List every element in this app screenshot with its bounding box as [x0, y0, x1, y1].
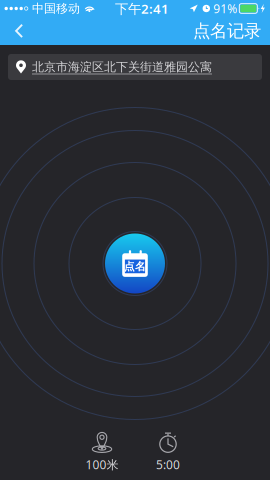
staticText: 下午2:41 — [115, 0, 169, 17]
button[interactable]: 点名记录 — [184, 17, 270, 45]
staticText: 91% — [213, 0, 237, 16]
button[interactable]: 返回 — [0, 17, 38, 45]
staticText: 北京市海淀区北下关街道雅园公寓 — [32, 60, 212, 74]
staticText: 100米 — [85, 456, 118, 472]
button[interactable]: 点名 — [105, 233, 165, 293]
staticText: 5:00 — [156, 456, 180, 472]
button[interactable]: 北京市海淀区北下关街道雅园公寓 — [8, 54, 262, 80]
button[interactable]: 100米 — [70, 434, 133, 470]
staticText: 中国移动 — [32, 1, 80, 16]
button[interactable]: 5:00 — [136, 434, 199, 470]
staticText: 点名记录 — [193, 20, 261, 42]
staticText: 点名 — [124, 260, 146, 273]
